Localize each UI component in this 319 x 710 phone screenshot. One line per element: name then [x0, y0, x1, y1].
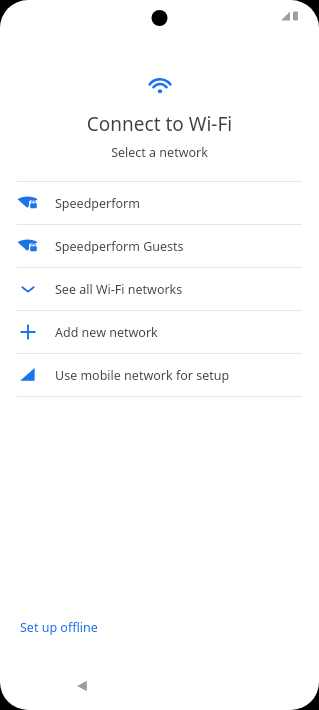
staticText: Add new network — [55, 324, 158, 341]
staticText: See all Wi-Fi networks — [55, 281, 183, 298]
staticText: Speedperform Guests — [55, 238, 184, 255]
button[interactable]: See all Wi-Fi networks — [0, 268, 319, 310]
staticText: Set up offline — [20, 619, 98, 636]
button[interactable]: Use mobile network for setup — [0, 354, 319, 396]
staticText: Select a network — [0, 144, 319, 161]
button[interactable]: Set up offline — [18, 613, 100, 642]
staticText: Connect to Wi-Fi — [0, 111, 319, 137]
button[interactable]: Back — [66, 670, 98, 702]
staticText: Use mobile network for setup — [55, 367, 230, 384]
button[interactable]: Speedperform — [0, 182, 319, 224]
staticText: Speedperform — [55, 195, 140, 212]
button[interactable]: Add new network — [0, 311, 319, 353]
button[interactable]: Speedperform Guests — [0, 225, 319, 267]
